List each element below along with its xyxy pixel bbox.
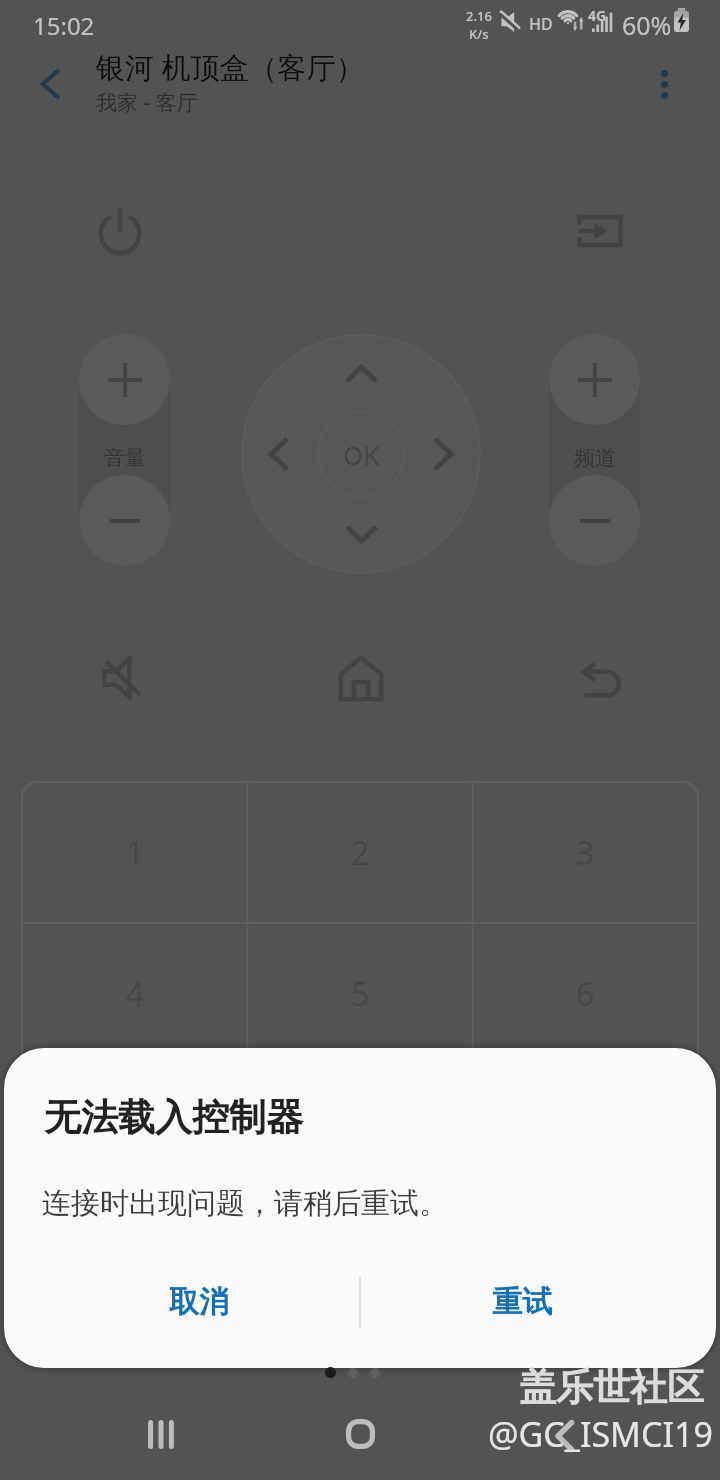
staticText: 7 — [126, 1113, 145, 1157]
staticText: HD — [529, 13, 553, 35]
button[interactable]: Input source — [568, 199, 632, 263]
staticText: 15:02 — [33, 9, 95, 42]
button[interactable]: Up — [334, 347, 388, 401]
staticText: 音量 — [104, 445, 146, 471]
button[interactable]: 重试 — [361, 1256, 682, 1348]
button[interactable]: 8 — [248, 1064, 473, 1205]
staticText: 2.16 — [466, 7, 492, 25]
button[interactable]: Volume up — [79, 334, 170, 425]
staticText: 3 — [576, 831, 595, 875]
button[interactable]: Volume down — [79, 475, 170, 566]
staticText: 取消 — [169, 1283, 229, 1321]
staticText: @GC_ISMCI19 — [488, 1411, 713, 1457]
button[interactable]: Home — [330, 1404, 390, 1464]
button[interactable]: Power — [88, 199, 152, 263]
button[interactable]: Recents — [131, 1404, 191, 1464]
button[interactable]: Back — [535, 1406, 595, 1466]
staticText: 2 — [351, 831, 370, 875]
button[interactable]: 7 — [22, 1064, 248, 1205]
staticText: K/s — [469, 25, 489, 43]
button[interactable]: 4 — [22, 923, 248, 1064]
staticText: 无法载入控制器 — [44, 1094, 303, 1141]
button[interactable]: 取消 — [38, 1256, 359, 1348]
button[interactable]: Back — [22, 56, 78, 112]
staticText: 重试 — [492, 1283, 552, 1321]
staticText: 银河 机顶盒（客厅） — [96, 47, 365, 87]
button[interactable]: 6 — [473, 923, 698, 1064]
button[interactable]: Left — [252, 427, 306, 481]
staticText: 4G — [588, 6, 607, 25]
staticText: 4 — [126, 972, 145, 1016]
button[interactable]: Down — [334, 507, 388, 561]
button[interactable]: 5 — [248, 923, 473, 1064]
button[interactable]: Channel down — [549, 475, 640, 566]
staticText: OK — [343, 437, 380, 472]
button[interactable]: Home — [329, 646, 393, 710]
staticText: 盖乐世社区 — [519, 1364, 704, 1411]
button[interactable]: More options — [636, 56, 692, 112]
staticText: 6 — [576, 972, 595, 1016]
staticText: 连接时出现问题，请稍后重试。 — [42, 1185, 448, 1222]
button[interactable]: Right — [416, 427, 470, 481]
button[interactable]: OK — [317, 410, 405, 498]
button[interactable]: Back — [570, 647, 634, 711]
button[interactable]: Channel up — [549, 334, 640, 425]
staticText: 1 — [126, 831, 145, 875]
button[interactable]: Mute — [89, 646, 153, 710]
staticText: 频道 — [574, 445, 616, 471]
staticText: 5 — [351, 972, 370, 1016]
staticText: 我家 - 客厅 — [96, 88, 198, 117]
staticText: 60% — [622, 8, 672, 42]
